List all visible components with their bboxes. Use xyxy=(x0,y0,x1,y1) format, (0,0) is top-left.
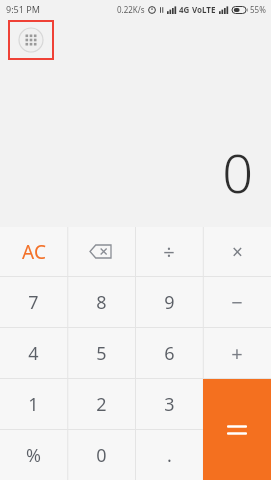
staticText: % xyxy=(26,443,41,468)
button[interactable]: Equals xyxy=(203,379,271,480)
staticText: 2 xyxy=(96,392,107,417)
staticText: 9:51 PM xyxy=(6,3,40,15)
button[interactable]: + xyxy=(203,328,271,378)
staticText: × xyxy=(232,239,243,265)
staticText: 55% xyxy=(250,4,266,15)
staticText: 4 xyxy=(28,341,39,366)
button[interactable]: 5 xyxy=(67,328,135,378)
button[interactable]: . xyxy=(135,430,203,480)
staticText: 0.22K/s xyxy=(117,4,145,15)
button[interactable]: 3 xyxy=(135,379,203,429)
button[interactable]: % xyxy=(0,430,67,480)
staticText: ÷ xyxy=(163,238,175,265)
button[interactable]: ÷ xyxy=(135,227,203,276)
button[interactable]: × xyxy=(203,227,271,276)
staticText: 0 xyxy=(222,135,253,209)
staticText: 7 xyxy=(28,290,39,315)
button[interactable]: 9 xyxy=(135,277,203,327)
button[interactable]: Backspace xyxy=(67,227,135,276)
button[interactable]: 4 xyxy=(0,328,67,378)
button[interactable]: 0 xyxy=(67,430,135,480)
button[interactable]: 6 xyxy=(135,328,203,378)
staticText: 0 xyxy=(96,443,107,468)
staticText: AC xyxy=(22,239,46,265)
button[interactable]: 7 xyxy=(0,277,67,327)
staticText: 1 xyxy=(28,392,39,417)
button[interactable]: 2 xyxy=(67,379,135,429)
button[interactable]: 1 xyxy=(0,379,67,429)
button[interactable]: 8 xyxy=(67,277,135,327)
staticText: VoLTE xyxy=(192,4,216,15)
button[interactable]: − xyxy=(203,277,271,327)
staticText: . xyxy=(167,443,172,468)
staticText: 4G xyxy=(179,4,190,15)
staticText: − xyxy=(231,289,243,316)
button[interactable]: Apps grid xyxy=(9,21,53,59)
staticText: 3 xyxy=(164,392,175,417)
staticText: + xyxy=(231,340,243,367)
staticText: 9 xyxy=(164,290,175,315)
staticText: 6 xyxy=(164,341,175,366)
staticText: 8 xyxy=(96,290,107,315)
staticText: 5 xyxy=(96,341,107,366)
button[interactable]: AC xyxy=(0,227,67,276)
